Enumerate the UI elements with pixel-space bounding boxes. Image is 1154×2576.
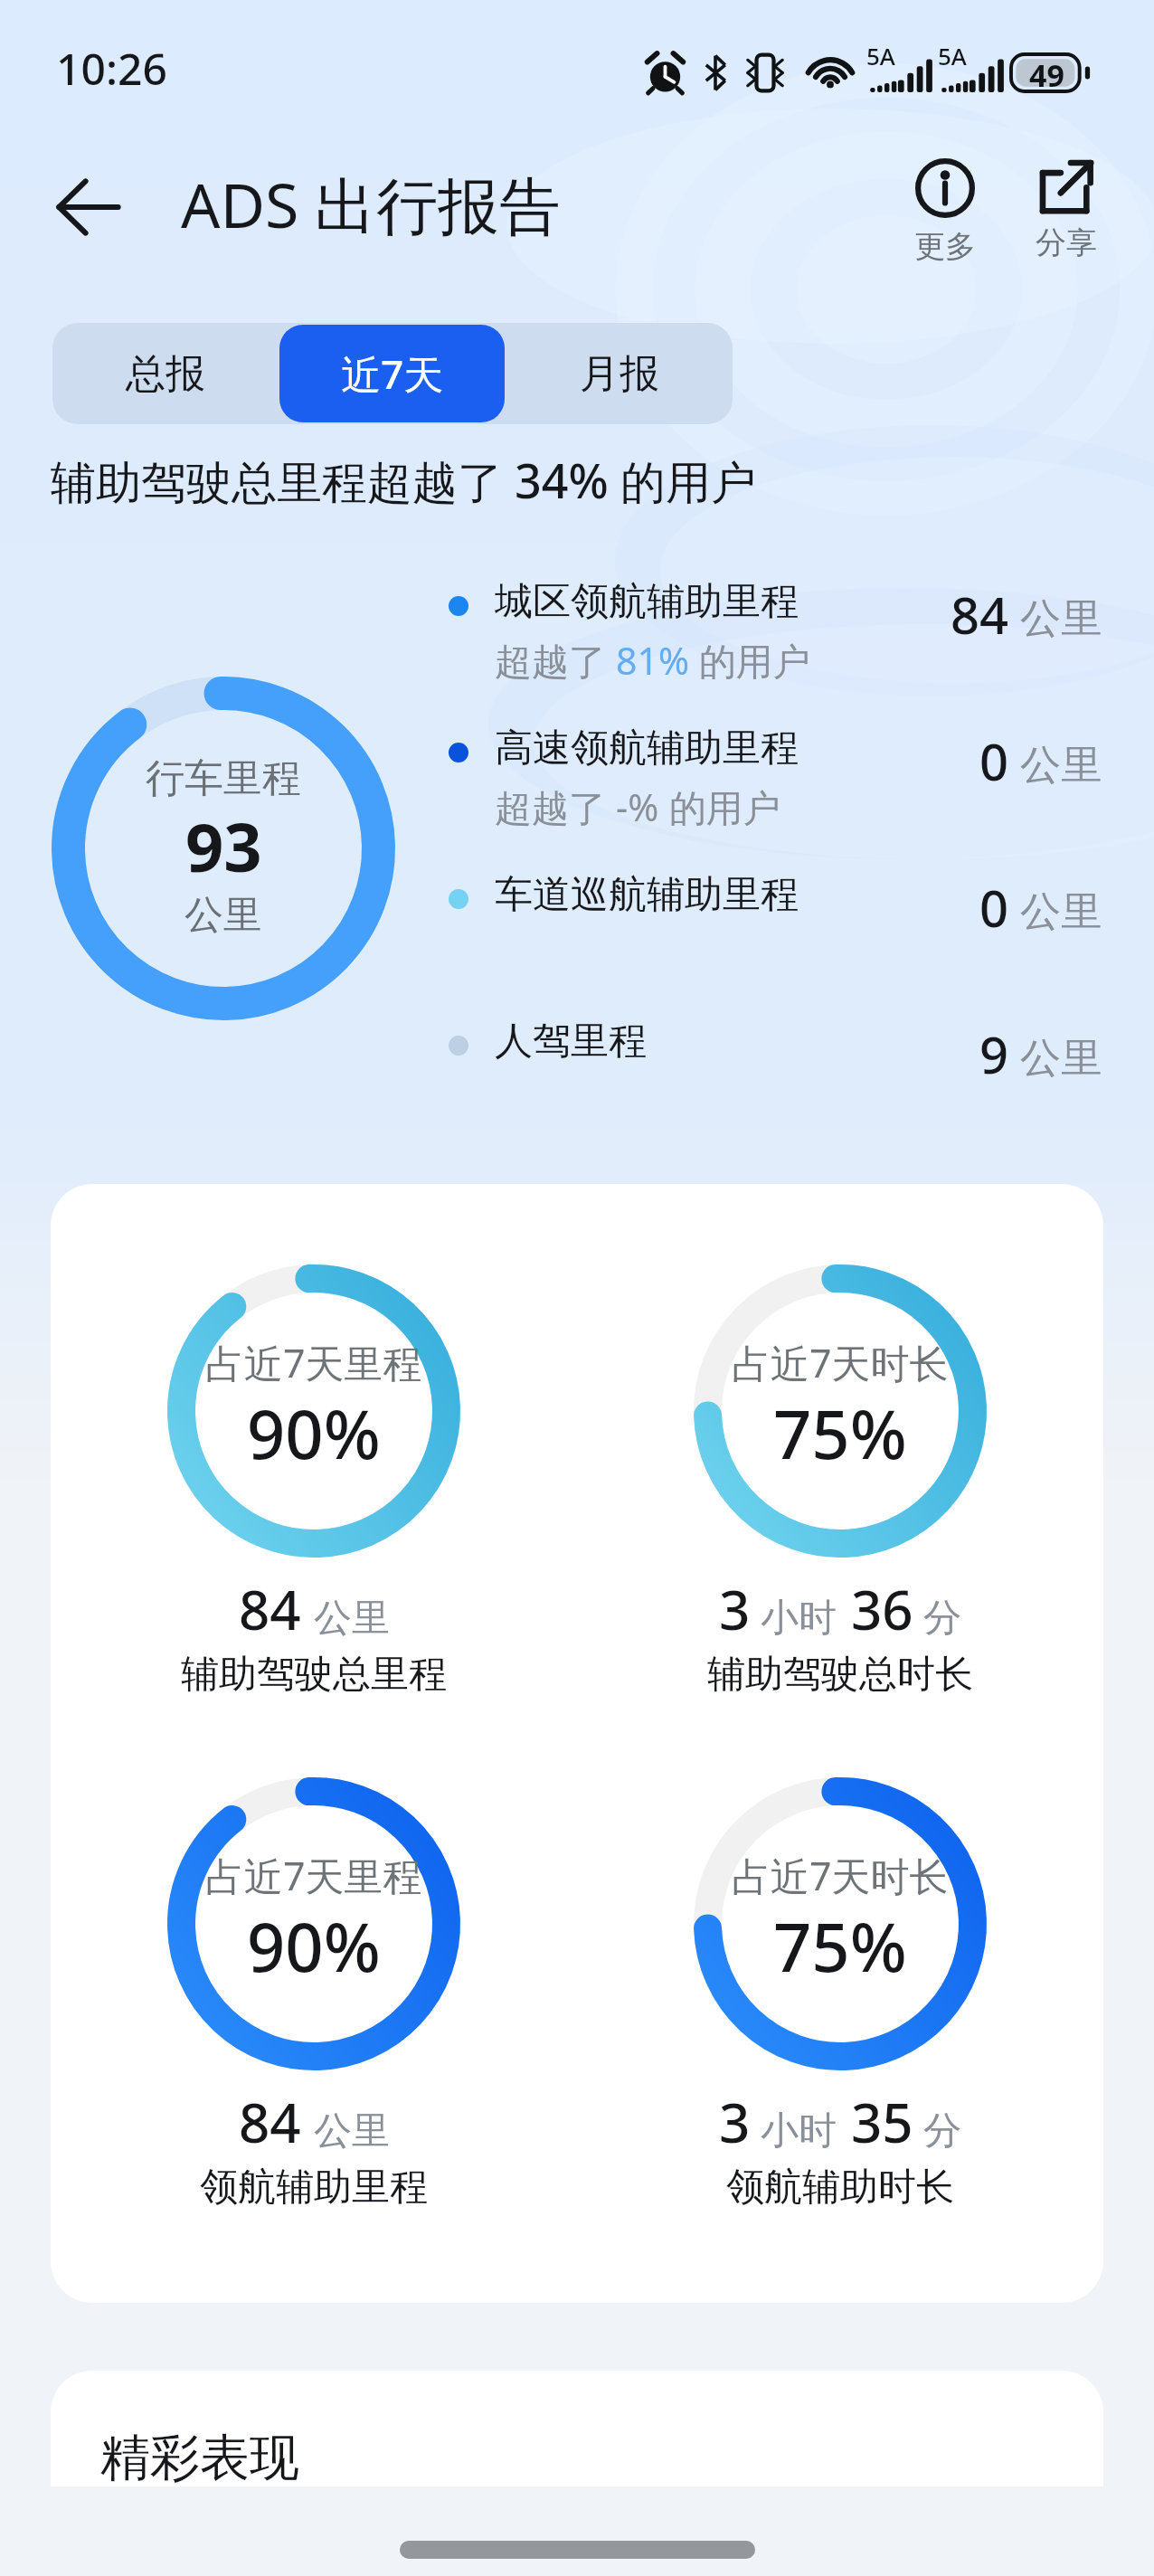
button[interactable]: More info	[887, 153, 1003, 271]
staticText: 占近7天里程	[205, 1849, 422, 1902]
staticText: 公里	[1020, 740, 1102, 791]
staticText: 84	[239, 1572, 301, 1646]
staticText: 36	[851, 1572, 913, 1646]
staticText: 辅助驾驶总时长	[707, 1651, 973, 1699]
staticText: 5A	[866, 40, 895, 71]
staticText: 49	[1029, 54, 1064, 96]
staticText: 分享	[1036, 223, 1097, 262]
staticText: 行车里程	[146, 754, 301, 803]
button[interactable]: 近7天	[279, 325, 505, 422]
staticText: 34%	[515, 448, 609, 512]
staticText: 的用户	[689, 635, 810, 686]
staticText: 近7天	[341, 346, 444, 401]
staticText: 0	[979, 726, 1009, 795]
staticText: ADS 出行报告	[181, 162, 562, 246]
staticText: 3	[719, 1572, 751, 1646]
staticText: 公里	[314, 2107, 390, 2155]
staticText: 公里	[184, 891, 262, 940]
staticText: 人驾里程	[495, 1018, 647, 1065]
button[interactable]: 高速领航辅助里程	[449, 724, 1102, 871]
staticText: 超越了	[495, 635, 616, 686]
button[interactable]: Share	[1008, 153, 1124, 268]
staticText: 84	[951, 580, 1009, 649]
button[interactable]: 月报	[506, 325, 732, 422]
button[interactable]: Back	[42, 156, 136, 251]
staticText: 占近7天时长	[732, 1849, 949, 1902]
staticText: 75%	[773, 1900, 907, 1992]
staticText: 35	[851, 2085, 913, 2159]
staticText: 公里	[314, 1595, 390, 1643]
staticText: 3	[719, 2085, 751, 2159]
staticText: 占近7天时长	[732, 1336, 949, 1389]
staticText: 9	[979, 1019, 1009, 1088]
button[interactable]: 城区领航辅助里程	[449, 578, 1102, 724]
staticText: 占近7天里程	[205, 1336, 422, 1389]
staticText: 小时	[761, 2107, 837, 2155]
staticText: 公里	[1020, 1033, 1102, 1084]
staticText: 81%	[616, 635, 689, 686]
staticText: 的用户	[609, 450, 756, 512]
staticText: 小时	[761, 1595, 837, 1643]
button[interactable]: 总报	[53, 325, 278, 422]
staticText: 月报	[580, 349, 659, 399]
staticText: 5A	[938, 40, 967, 71]
staticText: 的用户	[659, 781, 780, 832]
staticText: 辅助驾驶总里程	[181, 1651, 447, 1699]
staticText: 更多	[914, 227, 976, 266]
staticText: 车道巡航辅助里程	[495, 871, 799, 919]
staticText: 10:26	[56, 39, 167, 98]
staticText: 分	[923, 2107, 961, 2155]
staticText: 公里	[1020, 593, 1102, 645]
staticText: 90%	[247, 1387, 381, 1479]
staticText: 城区领航辅助里程	[495, 578, 799, 626]
staticText: 0	[979, 873, 1009, 942]
staticText: 超越了	[495, 781, 616, 832]
staticText: 公里	[1020, 886, 1102, 938]
staticText: 辅助驾驶总里程超越了	[51, 450, 515, 512]
staticText: 领航辅助里程	[200, 2164, 428, 2211]
button[interactable]: 车道巡航辅助里程	[449, 871, 1102, 1018]
staticText: -%	[616, 781, 659, 832]
staticText: 精彩表现	[100, 2427, 299, 2486]
staticText: 高速领航辅助里程	[495, 724, 799, 772]
staticText: 领航辅助时长	[726, 2164, 954, 2211]
staticText: 93	[185, 800, 262, 892]
button[interactable]: 精彩表现	[51, 2371, 1103, 2486]
staticText: 75%	[773, 1387, 907, 1479]
button[interactable]: 人驾里程	[449, 1018, 1102, 1164]
staticText: 总报	[126, 349, 205, 399]
staticText: 90%	[247, 1900, 381, 1992]
staticText: 84	[239, 2085, 301, 2159]
staticText: 分	[923, 1595, 961, 1643]
